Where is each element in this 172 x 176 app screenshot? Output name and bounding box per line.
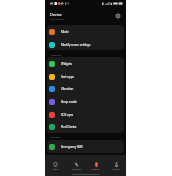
staticText: Modify scene settings — [61, 43, 91, 47]
button[interactable]: Remote — [66, 162, 86, 174]
button[interactable]: Mode — [47, 25, 124, 38]
staticText: Features — [51, 53, 62, 56]
staticText: Mode — [61, 30, 69, 34]
button[interactable]: Light — [45, 162, 66, 174]
staticText: Remote — [72, 167, 81, 170]
button[interactable]: Vibration — [47, 82, 124, 95]
staticText: Light — [53, 167, 59, 170]
button[interactable]: Widgets — [47, 57, 124, 70]
button[interactable]: Sort apps — [47, 70, 124, 83]
staticText: SOS eyes — [61, 113, 74, 117]
button[interactable]: Settings — [113, 11, 123, 21]
button[interactable]: Modify scene settings — [47, 38, 124, 50]
staticText: Device — [92, 167, 100, 170]
staticText: Find Device — [61, 125, 77, 129]
staticText: Device — [50, 12, 62, 17]
button[interactable]: Find Device — [47, 120, 124, 133]
button[interactable]: Sleep mode — [47, 95, 124, 108]
button[interactable]: Device — [86, 162, 106, 174]
staticText: Sleep mode — [61, 100, 77, 104]
button[interactable]: SOS eyes — [47, 108, 124, 121]
staticText: Sort apps — [61, 75, 74, 79]
staticText: Vibration — [61, 87, 74, 91]
staticText: Security — [51, 135, 61, 138]
button[interactable]: Emergency SMS — [47, 140, 124, 153]
staticText: Profile — [112, 167, 120, 170]
button[interactable]: Profile — [106, 162, 126, 174]
staticText: Emergency SMS — [61, 145, 83, 149]
staticText: Add devices — [50, 17, 64, 20]
staticText: Widgets — [61, 62, 73, 66]
